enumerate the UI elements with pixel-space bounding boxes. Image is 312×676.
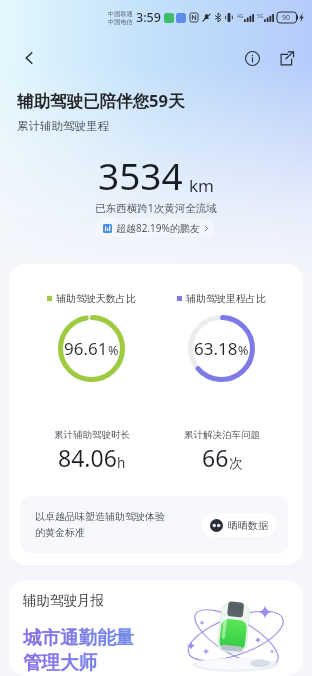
staticText: 累计辅助驾驶时长 bbox=[54, 429, 130, 441]
staticText: 66 bbox=[202, 442, 229, 473]
staticText: 84.06 bbox=[58, 442, 117, 473]
staticText: 96.61 bbox=[64, 337, 108, 360]
staticText: 城市通勤能量 管理大师 bbox=[23, 626, 134, 675]
staticText: 晒晒数据 bbox=[228, 519, 268, 532]
staticText: 辅助驾驶里程占比 bbox=[186, 292, 266, 305]
staticText: 超越82.19%的鹏友 bbox=[116, 221, 200, 235]
staticText: 4G bbox=[237, 13, 244, 20]
staticText: 辅助驾驶月报 bbox=[23, 592, 104, 609]
staticText: % bbox=[108, 342, 119, 359]
button[interactable]: 晒晒数据 bbox=[202, 513, 276, 537]
staticText: 累计解决泊车问题 bbox=[184, 429, 260, 441]
staticText: 中国联通 bbox=[108, 10, 133, 18]
button[interactable]: Share bbox=[273, 45, 299, 71]
button[interactable]: 超越82.19%的鹏友 bbox=[97, 219, 215, 237]
staticText: % bbox=[238, 342, 249, 359]
staticText: 5G bbox=[257, 13, 264, 20]
staticText: 中国电信 bbox=[108, 18, 133, 26]
staticText: 辅助驾驶已陪伴您59天 bbox=[17, 89, 185, 112]
staticText: 63.18 bbox=[194, 337, 238, 360]
staticText: 辅助驾驶天数占比 bbox=[56, 292, 136, 305]
staticText: 次 bbox=[229, 455, 243, 472]
staticText: 累计辅助驾驶里程 bbox=[17, 119, 109, 133]
staticText: 90 bbox=[282, 13, 291, 23]
staticText: 已东西横跨1次黄河全流域 bbox=[17, 201, 295, 215]
staticText: h bbox=[117, 454, 126, 472]
staticText: 3534 bbox=[98, 150, 183, 200]
staticText: 3:59 bbox=[136, 9, 161, 26]
button[interactable]: Info bbox=[239, 45, 265, 71]
button[interactable]: Back bbox=[16, 45, 42, 71]
staticText: 以卓越品味塑造辅助驾驶体验 的黄金标准 bbox=[35, 510, 165, 539]
staticText: km bbox=[189, 174, 214, 197]
